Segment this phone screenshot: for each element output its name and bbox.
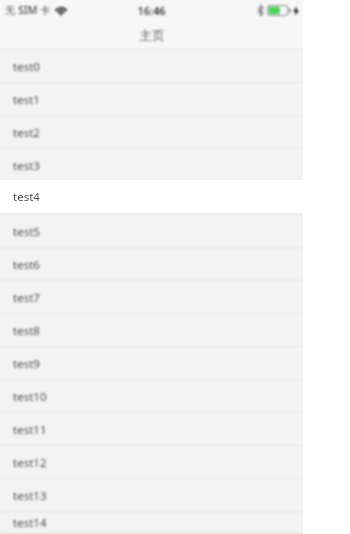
button[interactable]: test14 <box>0 512 303 534</box>
staticText: test14 <box>13 515 47 531</box>
staticText: test5 <box>13 224 40 240</box>
staticText: test7 <box>13 290 40 306</box>
staticText: test5 <box>13 224 40 240</box>
button[interactable]: test2 <box>0 116 303 149</box>
button[interactable]: test5 <box>0 215 303 248</box>
staticText: test13 <box>13 488 47 504</box>
staticText: test7 <box>13 290 40 306</box>
staticText: test10 <box>13 389 47 405</box>
staticText: test4 <box>13 189 40 205</box>
staticText: test11 <box>13 422 47 438</box>
staticText: test13 <box>13 488 47 504</box>
staticText: test0 <box>13 59 40 75</box>
button[interactable]: test8 <box>0 314 303 347</box>
button[interactable]: test12 <box>0 446 303 479</box>
staticText: test14 <box>13 515 47 531</box>
button[interactable]: test7 <box>0 281 303 314</box>
staticText: 16:46 <box>137 3 166 18</box>
staticText: test3 <box>13 158 40 174</box>
button[interactable]: test0 <box>0 50 303 83</box>
staticText: test4 <box>13 191 40 207</box>
staticText: test1 <box>13 92 40 108</box>
button[interactable]: test11 <box>0 413 303 446</box>
other: Charging <box>293 6 299 16</box>
button[interactable]: test1 <box>0 83 303 116</box>
staticText: test9 <box>13 356 40 372</box>
staticText: test9 <box>13 356 40 372</box>
staticText: test6 <box>13 257 40 273</box>
staticText: test6 <box>13 257 40 273</box>
button[interactable]: test6 <box>0 248 303 281</box>
other: Wi-Fi <box>55 6 67 15</box>
button[interactable]: test9 <box>0 347 303 380</box>
staticText: test11 <box>13 422 47 438</box>
staticText: test0 <box>13 59 40 75</box>
other: Bluetooth <box>257 5 264 16</box>
staticText: 主页 <box>139 27 165 43</box>
staticText: test8 <box>13 323 40 339</box>
staticText: test1 <box>13 92 40 108</box>
button[interactable]: test3 <box>0 149 303 182</box>
staticText: test12 <box>13 455 47 471</box>
staticText: test12 <box>13 455 47 471</box>
staticText: test2 <box>13 125 40 141</box>
other: Battery <box>267 5 291 16</box>
staticText: test3 <box>13 158 40 174</box>
staticText: test10 <box>13 389 47 405</box>
staticText: test8 <box>13 323 40 339</box>
staticText: test2 <box>13 125 40 141</box>
button[interactable]: test13 <box>0 479 303 512</box>
staticText: 无 SIM 卡 <box>5 3 51 17</box>
button[interactable]: test10 <box>0 380 303 413</box>
button[interactable]: test4 <box>0 180 303 213</box>
